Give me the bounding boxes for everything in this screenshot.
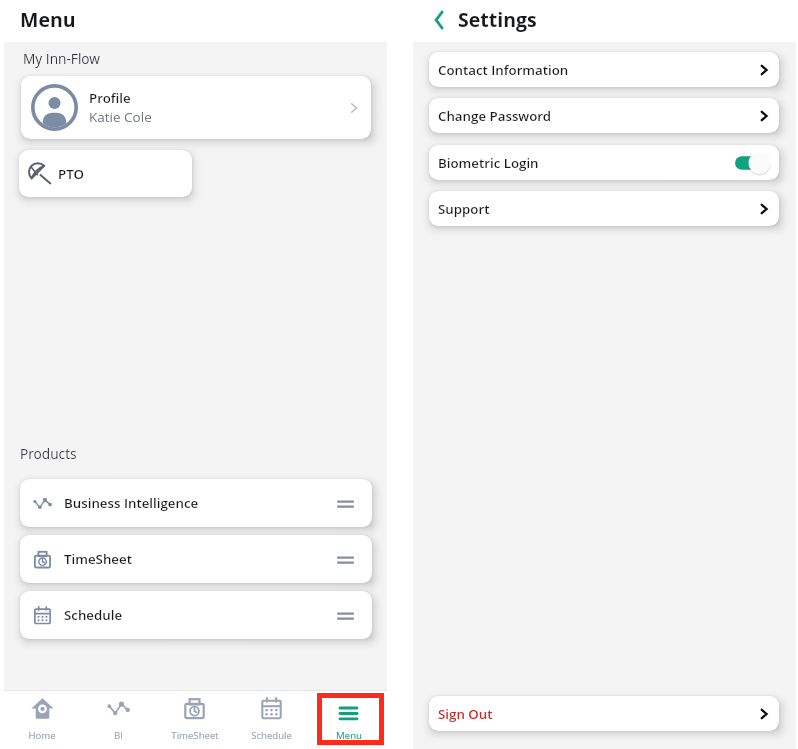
staticText: My Inn-Flow xyxy=(23,49,100,68)
button[interactable]: Home xyxy=(4,690,80,749)
staticText: TimeSheet xyxy=(171,729,219,742)
staticText: Support xyxy=(438,200,490,218)
staticText: Menu xyxy=(336,729,362,742)
button[interactable]: Biometric Login xyxy=(429,145,779,180)
staticText: BI xyxy=(114,729,123,742)
staticText: Contact Information xyxy=(438,61,569,79)
staticText: Profile xyxy=(89,89,131,107)
staticText: PTO xyxy=(58,165,84,183)
button[interactable]: Profile xyxy=(21,76,371,139)
staticText: Katie Cole xyxy=(89,108,152,126)
button[interactable]: Back xyxy=(426,7,452,33)
staticText: Change Password xyxy=(438,107,552,125)
button[interactable]: Schedule xyxy=(20,591,372,639)
button[interactable]: Sign Out xyxy=(429,696,779,731)
button[interactable]: Business Intelligence xyxy=(20,479,372,527)
button[interactable]: BI xyxy=(80,690,156,749)
staticText: Biometric Login xyxy=(438,154,539,172)
staticText: Schedule xyxy=(251,729,292,742)
button[interactable]: Biometric login toggle xyxy=(735,151,773,175)
button[interactable]: Support xyxy=(429,191,779,226)
button[interactable]: Schedule xyxy=(233,690,310,749)
staticText: Business Intelligence xyxy=(64,494,199,512)
button[interactable]: TimeSheet xyxy=(156,690,233,749)
staticText: Home xyxy=(28,729,56,742)
staticText: Menu xyxy=(20,6,76,33)
staticText: Products xyxy=(20,444,77,463)
button[interactable]: Menu xyxy=(310,690,387,749)
staticText: TimeSheet xyxy=(64,550,132,568)
staticText: Schedule xyxy=(64,606,123,624)
button[interactable]: TimeSheet xyxy=(20,535,372,583)
button[interactable]: Change Password xyxy=(429,98,779,133)
staticText: Settings xyxy=(458,6,537,33)
staticText: Sign Out xyxy=(438,705,493,723)
button[interactable]: PTO xyxy=(19,150,192,197)
button[interactable]: Contact Information xyxy=(429,52,779,87)
